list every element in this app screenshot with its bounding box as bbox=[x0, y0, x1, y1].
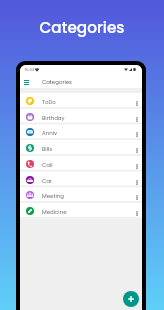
staticText: Car bbox=[42, 177, 52, 185]
button[interactable]: Bills bbox=[20, 140, 142, 156]
staticText: Bills bbox=[42, 145, 53, 153]
button[interactable]: More options for Call bbox=[133, 162, 141, 171]
staticText: ToDo bbox=[42, 98, 56, 106]
button[interactable]: More options for Birthday bbox=[133, 115, 141, 124]
staticText: Meeting bbox=[42, 192, 64, 200]
button[interactable]: More options for Bills bbox=[133, 146, 141, 155]
button[interactable]: Medicine bbox=[20, 203, 142, 219]
staticText: Anniv bbox=[42, 129, 58, 137]
button[interactable]: Call bbox=[20, 156, 142, 172]
staticText: Categories bbox=[42, 78, 72, 86]
button[interactable]: Open navigation menu bbox=[21, 76, 32, 88]
button[interactable]: More options for ToDo bbox=[133, 99, 141, 108]
staticText: Medicine bbox=[42, 208, 67, 216]
staticText: Birthday bbox=[42, 114, 65, 122]
staticText: Call bbox=[42, 161, 53, 169]
button[interactable]: ToDo bbox=[20, 93, 142, 109]
button[interactable]: Meeting bbox=[20, 187, 142, 203]
button[interactable]: More options for Meeting bbox=[133, 193, 141, 202]
button[interactable]: Add category bbox=[123, 291, 139, 307]
button[interactable]: Birthday bbox=[20, 109, 142, 125]
staticText: Categories bbox=[0, 17, 164, 38]
button[interactable]: More options for Medicine bbox=[133, 209, 141, 218]
staticText: 16:03 bbox=[24, 67, 35, 72]
button[interactable]: Anniv bbox=[20, 124, 142, 140]
button[interactable]: More options for Anniv bbox=[133, 130, 141, 139]
button[interactable]: More options for Car bbox=[133, 178, 141, 187]
button[interactable]: Car bbox=[20, 172, 142, 188]
